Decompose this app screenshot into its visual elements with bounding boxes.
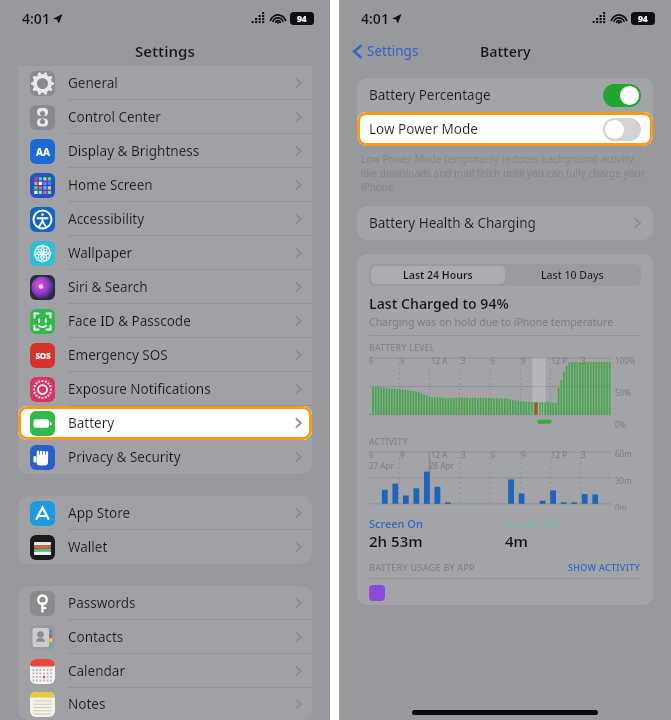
staticText: 12 P: [551, 449, 568, 460]
button[interactable]: Contacts: [18, 620, 312, 654]
staticText: General: [68, 74, 118, 92]
button[interactable]: Settings: [339, 38, 427, 64]
staticText: Battery Percentage: [369, 86, 491, 104]
staticText: 6: [369, 449, 374, 460]
button[interactable]: Siri & Search: [18, 270, 312, 304]
staticText: Screen On: [369, 516, 423, 531]
staticText: 4:01: [361, 9, 389, 28]
staticText: 4m: [505, 531, 528, 551]
button[interactable]: Face ID & Passcode: [18, 304, 312, 338]
staticText: Siri & Search: [68, 278, 148, 296]
button[interactable]: Privacy & Security: [18, 440, 312, 474]
button[interactable]: Passwords: [18, 586, 312, 620]
staticText: Exposure Notifications: [68, 380, 211, 398]
staticText: Battery: [68, 414, 115, 432]
staticText: Privacy & Security: [68, 448, 181, 466]
staticText: 3: [581, 449, 586, 460]
staticText: Home Screen: [68, 176, 153, 194]
button[interactable]: Battery: [18, 406, 312, 440]
button[interactable]: Control Center: [18, 100, 312, 134]
staticText: Passwords: [68, 594, 136, 612]
staticText: Face ID & Passcode: [68, 312, 191, 330]
button[interactable]: Exposure Notifications: [18, 372, 312, 406]
staticText: Battery Health & Charging: [369, 214, 536, 232]
button[interactable]: Notes: [18, 688, 312, 720]
staticText: 6: [491, 355, 496, 366]
staticText: Low Power Mode temporarily reduces backg…: [361, 152, 651, 194]
staticText: ACTIVITY: [369, 436, 408, 448]
staticText: 12 A: [431, 355, 448, 366]
staticText: 6: [491, 449, 496, 460]
button[interactable]: Wallet: [18, 530, 312, 564]
staticText: 50%: [615, 387, 631, 398]
staticText: 27 Apr: [369, 460, 394, 471]
button[interactable]: AA: [18, 134, 312, 168]
staticText: 4:01: [22, 9, 50, 28]
staticText: Emergency SOS: [68, 346, 168, 364]
staticText: App Store: [68, 504, 131, 522]
button[interactable]: Low Power Mode: [357, 112, 653, 146]
staticText: 12 A: [431, 449, 448, 460]
staticText: SOS: [35, 350, 51, 361]
staticText: SHOW ACTIVITY: [568, 561, 641, 573]
staticText: AA: [36, 145, 50, 159]
staticText: Last 10 Days: [541, 268, 604, 282]
button[interactable]: SOS: [18, 338, 312, 372]
staticText: 0%: [615, 419, 627, 430]
staticText: 9: [400, 355, 405, 366]
staticText: 9: [400, 449, 405, 460]
staticText: Calendar: [68, 662, 125, 680]
staticText: 30m: [615, 475, 632, 486]
staticText: 3: [461, 449, 466, 460]
staticText: BATTERY USAGE BY APP: [369, 561, 476, 573]
staticText: Control Center: [68, 108, 161, 126]
button[interactable]: Last 24 Hours: [371, 266, 505, 284]
staticText: BATTERY LEVEL: [369, 342, 435, 354]
staticText: Contacts: [68, 628, 124, 646]
staticText: Charging was on hold due to iPhone tempe…: [369, 315, 614, 329]
staticText: Low Power Mode: [369, 120, 478, 138]
button[interactable]: App Store: [18, 496, 312, 530]
staticText: Battery: [480, 42, 531, 61]
staticText: 2h 53m: [369, 531, 423, 551]
button[interactable]: General: [18, 66, 312, 100]
button[interactable]: Wallpaper: [18, 236, 312, 270]
staticText: 12 P: [551, 355, 568, 366]
staticText: 3: [461, 355, 466, 366]
button[interactable]: Battery Percentage: [357, 78, 653, 112]
staticText: Display & Brightness: [68, 142, 200, 160]
button[interactable]: Last 10 Days: [505, 266, 639, 284]
staticText: 6: [369, 355, 374, 366]
staticText: 28 Apr: [429, 460, 454, 471]
staticText: Settings: [367, 42, 419, 60]
staticText: Wallpaper: [68, 244, 133, 262]
button[interactable]: SHOW ACTIVITY: [568, 561, 641, 573]
staticText: 3: [581, 355, 586, 366]
button[interactable]: Battery Health & Charging: [357, 206, 653, 240]
staticText: Notes: [68, 695, 106, 713]
staticText: Wallet: [68, 538, 108, 556]
staticText: 94: [297, 13, 307, 25]
staticText: 94: [638, 13, 648, 25]
button[interactable]: Home Screen: [18, 168, 312, 202]
staticText: 100%: [615, 355, 636, 366]
staticText: Accessibility: [68, 210, 145, 228]
staticText: 9: [521, 355, 526, 366]
staticText: 60m: [615, 448, 632, 459]
staticText: 9: [521, 449, 526, 460]
button[interactable]: Calendar: [18, 654, 312, 688]
staticText: Settings: [135, 41, 195, 61]
staticText: 0m: [615, 502, 628, 510]
button[interactable]: Accessibility: [18, 202, 312, 236]
staticText: Last Charged to 94%: [369, 294, 509, 313]
staticText: Screen Off: [505, 516, 560, 531]
staticText: Last 24 Hours: [403, 268, 473, 282]
